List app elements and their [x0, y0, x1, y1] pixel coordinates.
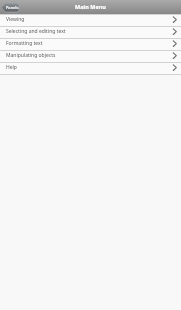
button[interactable]: Viewing — [0, 15, 181, 26]
button[interactable]: Panels, back — [1, 3, 19, 12]
staticText: Main Menu — [75, 3, 106, 10]
button[interactable]: Selecting and editing text — [0, 27, 181, 38]
staticText: Manipulating objects — [6, 52, 56, 59]
staticText: Formatting text — [6, 40, 43, 47]
staticText: Help — [6, 64, 17, 71]
staticText: Selecting and editing text — [6, 28, 66, 35]
button[interactable]: Help — [0, 63, 181, 74]
staticText: Panels — [6, 5, 19, 10]
button[interactable]: Formatting text — [0, 39, 181, 50]
button[interactable]: Manipulating objects — [0, 51, 181, 62]
staticText: Viewing — [6, 16, 25, 23]
